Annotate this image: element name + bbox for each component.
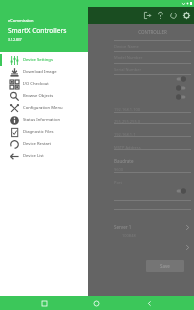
staticText: 100848 bbox=[122, 233, 136, 238]
button[interactable]: Diagnostic Files bbox=[0, 126, 88, 138]
button[interactable]: Logout bbox=[141, 9, 154, 22]
button[interactable]: I/O Checkout bbox=[0, 78, 88, 90]
staticText: Browse Objects bbox=[23, 93, 54, 99]
button[interactable]: Device Restart bbox=[0, 138, 88, 150]
button[interactable]: Device Settings bbox=[0, 54, 88, 66]
staticText: Device List bbox=[23, 153, 44, 159]
button[interactable]: Status Information bbox=[0, 114, 88, 126]
button[interactable]: Toggle bbox=[176, 85, 186, 91]
button[interactable]: Refresh bbox=[167, 9, 180, 22]
button[interactable]: Browse Objects bbox=[0, 90, 88, 102]
button[interactable]: Server 1 bbox=[114, 221, 191, 233]
staticText: MSTP Address bbox=[114, 145, 141, 150]
button[interactable]: Device List bbox=[0, 150, 88, 162]
staticText: Diagnostic Files bbox=[23, 129, 54, 135]
staticText: 3.1.2.837 bbox=[8, 38, 22, 42]
staticText: Model Number bbox=[114, 55, 143, 60]
button[interactable]: Home bbox=[88, 296, 104, 310]
button[interactable]: Help bbox=[154, 9, 167, 22]
button[interactable]: Recents bbox=[36, 296, 52, 310]
button[interactable]: Toggle bbox=[176, 94, 186, 100]
staticText: SmartX Controllers bbox=[8, 26, 67, 35]
staticText: Port bbox=[114, 180, 122, 185]
button[interactable]: Download Image bbox=[0, 66, 88, 78]
staticText: Save bbox=[160, 263, 170, 269]
staticText: Configuration Menu bbox=[23, 105, 63, 111]
button[interactable]: Save bbox=[146, 260, 184, 272]
button[interactable]: Configuration Menu bbox=[0, 102, 88, 114]
staticText: Device Restart bbox=[23, 141, 52, 147]
staticText: 192.168.1.100 bbox=[114, 107, 141, 112]
staticText: Baudrate bbox=[114, 158, 134, 164]
staticText: Device Name bbox=[114, 44, 139, 49]
staticText: CONTROLLER bbox=[114, 29, 191, 35]
staticText: Download Image bbox=[23, 69, 57, 75]
staticText: I/O Checkout bbox=[23, 81, 49, 87]
staticText: Serial Number bbox=[114, 67, 142, 72]
button[interactable]: Settings bbox=[180, 9, 193, 22]
staticText: Server 1 bbox=[114, 224, 132, 230]
button[interactable]: Back bbox=[141, 296, 157, 310]
staticText: Status Information bbox=[23, 117, 61, 123]
button[interactable]: Toggle bbox=[176, 188, 186, 194]
staticText: 192.168.1.1 bbox=[114, 132, 136, 137]
staticText: 9600 bbox=[114, 167, 124, 172]
staticText: 255.255.255.0 bbox=[114, 119, 141, 124]
staticText: eCommission bbox=[8, 18, 34, 23]
staticText: Device Settings bbox=[23, 57, 53, 63]
button[interactable]: Toggle bbox=[176, 76, 186, 82]
